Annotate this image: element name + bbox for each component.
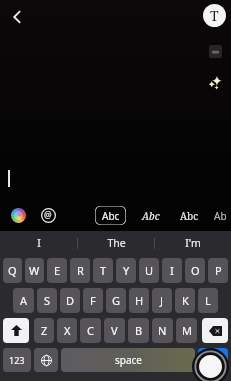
button[interactable]: Shift: [3, 318, 29, 343]
button[interactable]: I'm: [155, 231, 231, 255]
staticText: Ab: [214, 209, 227, 223]
button[interactable]: W: [25, 258, 44, 283]
staticText: R: [77, 263, 84, 278]
staticText: D: [66, 293, 75, 308]
staticText: C: [87, 323, 94, 338]
staticText: Abc: [102, 209, 120, 223]
staticText: G: [112, 293, 121, 308]
staticText: T: [210, 6, 219, 25]
staticText: L: [205, 293, 211, 308]
button[interactable]: I: [162, 258, 182, 283]
button[interactable]: L: [198, 288, 218, 313]
staticText: J: [160, 293, 164, 308]
button[interactable]: D: [60, 288, 80, 313]
button[interactable]: E: [47, 258, 67, 283]
button[interactable]: H: [129, 288, 149, 313]
button[interactable]: Q: [3, 258, 22, 283]
button[interactable]: J: [152, 288, 172, 313]
button[interactable]: X: [57, 318, 77, 343]
button[interactable]: Ab: [214, 206, 230, 225]
staticText: Z: [41, 323, 48, 338]
button[interactable]: U: [139, 258, 159, 283]
staticText: X: [64, 323, 71, 338]
button[interactable]: Text tool: [203, 4, 226, 27]
button[interactable]: R: [70, 258, 90, 283]
button[interactable]: space: [61, 348, 195, 372]
staticText: M: [182, 323, 192, 338]
staticText: H: [135, 293, 144, 308]
button[interactable]: V: [104, 318, 125, 343]
staticText: I'm: [185, 236, 201, 250]
button[interactable]: A: [13, 288, 34, 313]
button[interactable]: Y: [116, 258, 136, 283]
staticText: I: [170, 263, 174, 278]
staticText: B: [135, 323, 143, 338]
staticText: Y: [123, 263, 130, 278]
staticText: A: [20, 293, 28, 308]
button[interactable]: 123: [3, 348, 31, 372]
button[interactable]: Send: [198, 348, 228, 372]
button[interactable]: Z: [34, 318, 54, 343]
staticText: The: [107, 236, 126, 250]
button[interactable]: Sticker: [205, 41, 225, 61]
button[interactable]: Abc: [138, 206, 164, 225]
staticText: P: [215, 263, 222, 278]
staticText: T: [100, 263, 107, 278]
staticText: Abc: [142, 209, 160, 223]
staticText: I: [37, 236, 41, 250]
button[interactable]: M: [176, 318, 197, 343]
staticText: F: [90, 293, 96, 308]
button[interactable]: Abc: [95, 206, 126, 225]
staticText: K: [182, 293, 189, 308]
staticText: O: [191, 263, 200, 278]
button[interactable]: N: [152, 318, 173, 343]
staticText: @: [44, 209, 52, 221]
staticText: W: [29, 263, 40, 278]
staticText: space: [115, 353, 142, 367]
button[interactable]: The: [78, 231, 154, 255]
button[interactable]: G: [106, 288, 126, 313]
staticText: U: [145, 263, 154, 278]
button[interactable]: I: [0, 231, 77, 255]
button[interactable]: Abc: [176, 206, 202, 225]
button[interactable]: Color picker: [7, 204, 29, 226]
button[interactable]: Change keyboard: [34, 348, 58, 372]
button[interactable]: Back: [4, 4, 30, 30]
staticText: Q: [8, 263, 17, 278]
button[interactable]: Mention: [37, 204, 59, 226]
button[interactable]: B: [128, 318, 149, 343]
button[interactable]: O: [185, 258, 205, 283]
staticText: N: [158, 323, 167, 338]
button[interactable]: K: [175, 288, 195, 313]
button[interactable]: Capture: [192, 348, 229, 381]
button[interactable]: S: [37, 288, 57, 313]
staticText: 123: [9, 354, 25, 366]
staticText: E: [54, 263, 61, 278]
staticText: V: [111, 323, 118, 338]
button[interactable]: Effects: [205, 73, 225, 93]
staticText: S: [44, 293, 51, 308]
button[interactable]: C: [80, 318, 101, 343]
button[interactable]: T: [93, 258, 113, 283]
button[interactable]: P: [208, 258, 228, 283]
button[interactable]: F: [83, 288, 103, 313]
staticText: Abc: [180, 209, 199, 223]
button[interactable]: Backspace: [202, 318, 228, 343]
